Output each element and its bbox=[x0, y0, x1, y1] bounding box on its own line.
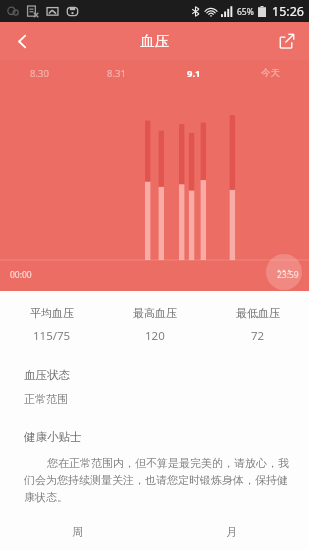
staticText: 健康小贴士 bbox=[24, 430, 82, 444]
staticText: 您在正常范围内，但不算是最完美的，请放心，我们会为您持续测量关注，也请您定时锻炼… bbox=[24, 455, 293, 504]
staticText: 平均血压 bbox=[30, 306, 74, 320]
button[interactable]: 月 bbox=[154, 514, 309, 550]
staticText: 9.1 bbox=[187, 67, 201, 80]
staticText: 血压 bbox=[140, 32, 169, 50]
staticText: 最低血压 bbox=[236, 306, 280, 320]
staticText: 120 bbox=[145, 328, 165, 344]
staticText: 正常范围 bbox=[24, 392, 68, 406]
staticText: 月 bbox=[226, 525, 237, 539]
staticText: 今天 bbox=[261, 67, 280, 79]
staticText: 72 bbox=[251, 328, 265, 344]
staticText: 最高血压 bbox=[133, 306, 177, 320]
staticText: 23:59 bbox=[277, 269, 299, 281]
staticText: 血压状态 bbox=[24, 368, 70, 382]
staticText: 8.31 bbox=[107, 67, 126, 80]
staticText: 15:26 bbox=[272, 3, 304, 20]
staticText: 8.30 bbox=[30, 67, 49, 80]
button[interactable]: Back bbox=[0, 22, 44, 60]
button[interactable]: 8.31 bbox=[78, 60, 155, 86]
staticText: 周 bbox=[72, 525, 83, 539]
button[interactable]: 今天 bbox=[232, 60, 309, 86]
button[interactable]: 最高血压 bbox=[103, 306, 206, 344]
button[interactable]: Share bbox=[265, 22, 309, 60]
button[interactable]: More options bbox=[266, 254, 302, 290]
button[interactable]: 周 bbox=[0, 514, 154, 550]
button[interactable]: 平均血压 bbox=[0, 306, 103, 344]
staticText: 00:00 bbox=[10, 269, 32, 281]
staticText: 65% bbox=[237, 6, 254, 18]
button[interactable]: 8.30 bbox=[0, 60, 78, 86]
button[interactable]: 9.1 bbox=[155, 60, 232, 86]
staticText: 115/75 bbox=[33, 328, 71, 344]
button[interactable]: 最低血压 bbox=[206, 306, 309, 344]
